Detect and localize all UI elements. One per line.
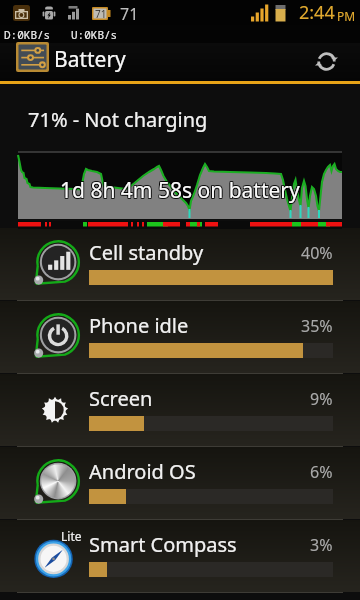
staticText: 40%	[301, 242, 333, 264]
staticText: 1d 8h 4m 58s on battery	[61, 177, 301, 206]
button[interactable]: Phone idle	[0, 301, 360, 374]
staticText: 2:44	[299, 0, 335, 25]
staticText: 9%	[310, 388, 333, 410]
staticText: 1d 8h 4m 58s on battery	[59, 176, 299, 205]
button[interactable]: Screen	[0, 374, 360, 447]
staticText: 71	[120, 3, 139, 25]
staticText: 3%	[310, 534, 333, 556]
staticText: U:0KB/s	[71, 27, 118, 42]
staticText: 71% - Not charging	[28, 106, 208, 133]
staticText: Android OS	[89, 458, 196, 485]
staticText: 1d 8h 4m 58s on battery	[60, 175, 300, 204]
staticText: PM	[337, 8, 356, 24]
staticText: 1d 8h 4m 58s on battery	[61, 176, 301, 205]
staticText: Screen	[89, 385, 153, 412]
staticText: 1d 8h 4m 58s on battery	[61, 175, 301, 204]
button[interactable]: Android OS	[0, 447, 360, 520]
staticText: Battery	[54, 45, 126, 74]
staticText: Lite	[61, 528, 82, 544]
staticText: D:0KB/s	[4, 27, 51, 42]
staticText: Cell standby	[89, 239, 204, 266]
button[interactable]: Refresh	[306, 42, 346, 80]
button[interactable]: Cell standby	[0, 228, 360, 301]
staticText: Smart Compass	[89, 531, 237, 558]
button[interactable]: Lite	[0, 520, 360, 593]
staticText: 1d 8h 4m 58s on battery	[59, 177, 299, 206]
staticText: 1d 8h 4m 58s on battery	[59, 175, 299, 204]
staticText: Phone idle	[89, 312, 189, 339]
staticText: 1d 8h 4m 58s on battery	[60, 177, 300, 206]
staticText: 35%	[301, 315, 333, 337]
staticText: 71	[95, 7, 107, 21]
staticText: 6%	[310, 461, 333, 483]
staticText: 1d 8h 4m 58s on battery	[60, 176, 300, 205]
